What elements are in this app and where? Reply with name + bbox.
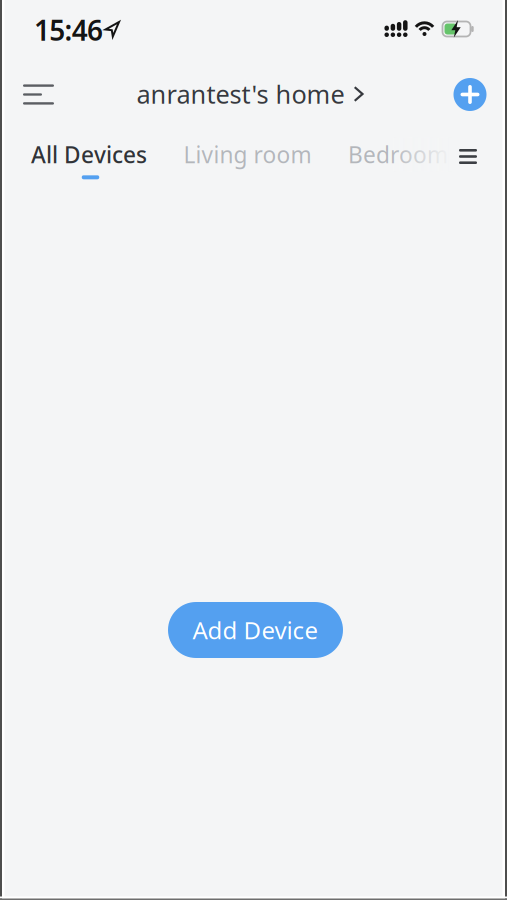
staticText: 15:46 <box>34 11 103 49</box>
button[interactable]: Bedroom <box>348 139 448 169</box>
button[interactable]: Living room <box>183 139 311 169</box>
button[interactable]: Add <box>450 74 490 114</box>
button[interactable]: Add Device <box>168 602 343 658</box>
staticText: Add Device <box>192 614 318 646</box>
button[interactable]: anrantest's home <box>136 77 363 111</box>
button[interactable]: Room management <box>453 142 483 170</box>
button[interactable]: All Devices <box>31 139 147 169</box>
staticText: anrantest's home <box>136 77 344 111</box>
button[interactable]: Menu <box>23 84 54 104</box>
staticText: All Devices <box>31 139 147 169</box>
staticText: Living room <box>183 139 311 169</box>
staticText: Bedroom <box>348 139 448 169</box>
